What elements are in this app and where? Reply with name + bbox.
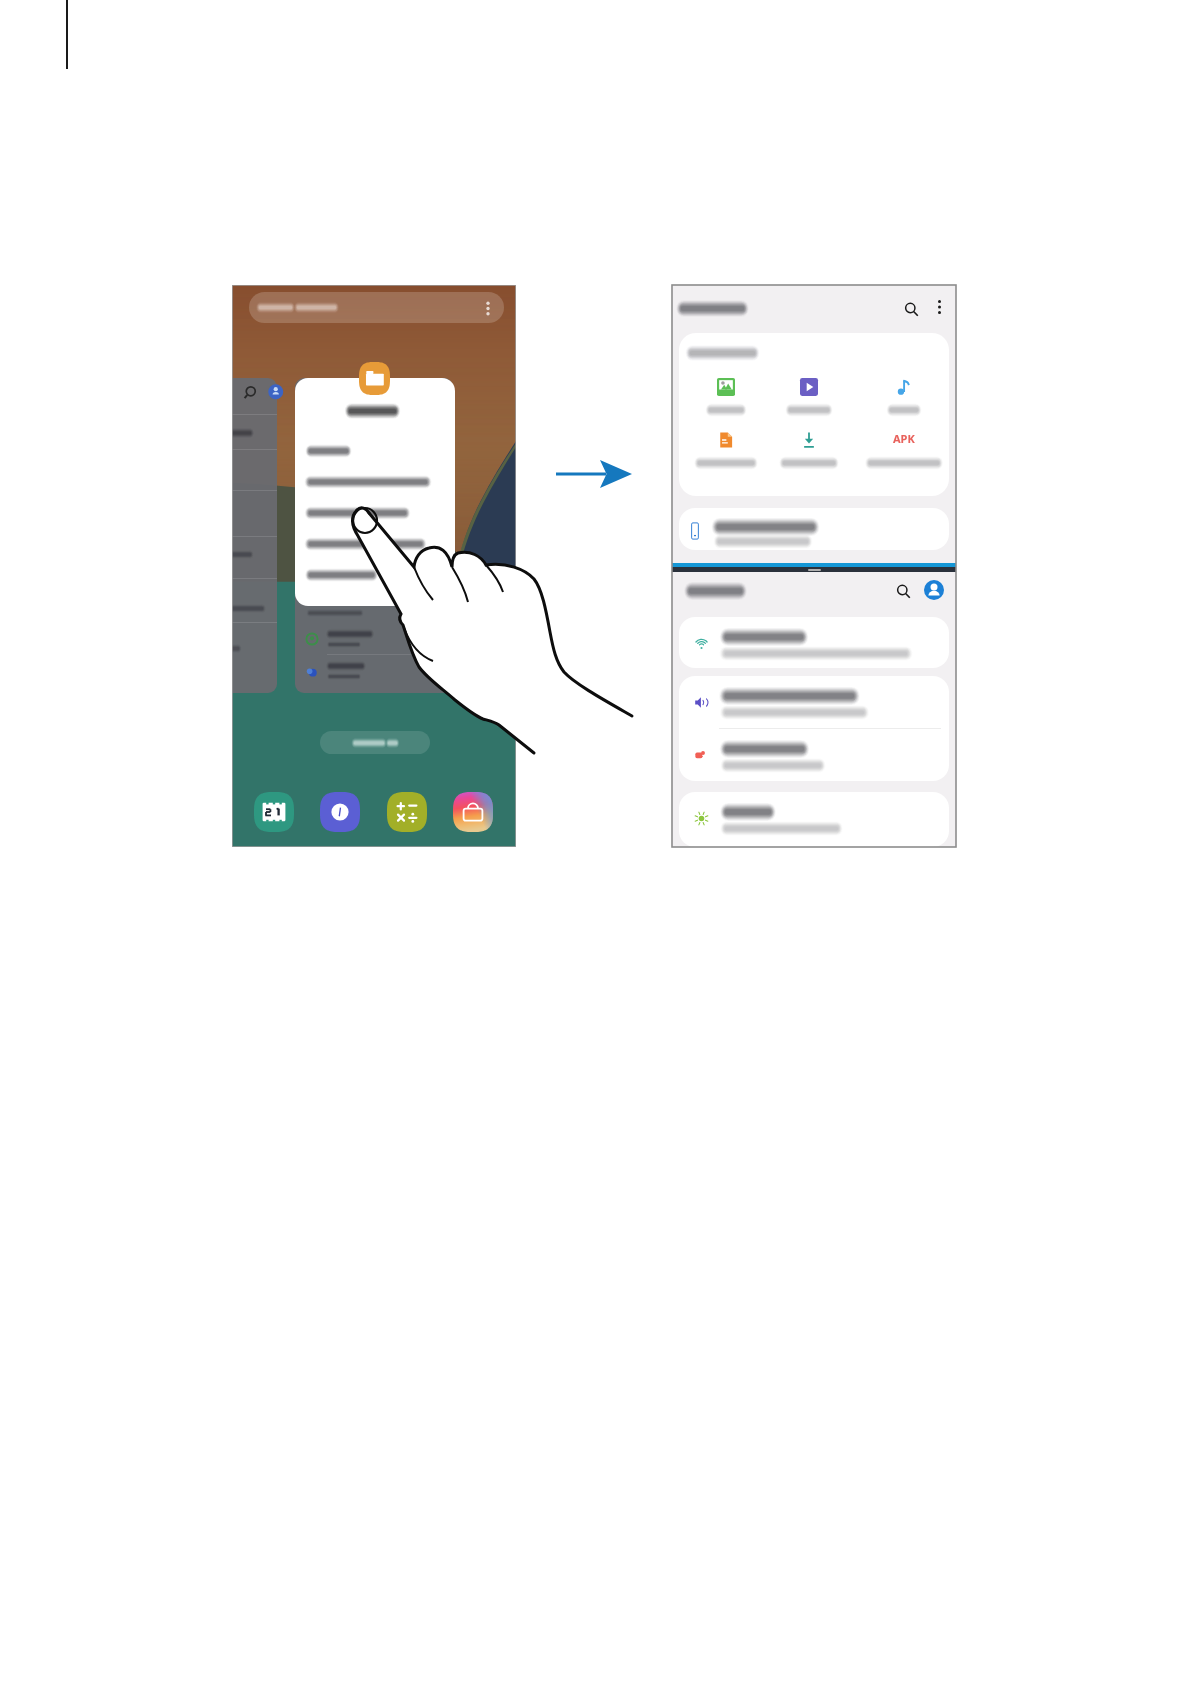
button[interactable]: Internet	[320, 792, 360, 832]
button[interactable]: Galaxy Store	[453, 792, 493, 832]
button[interactable]	[295, 502, 455, 524]
button[interactable]: Calendar	[254, 792, 294, 832]
button[interactable]: More options	[930, 298, 948, 316]
button[interactable]: Finder search	[249, 292, 504, 323]
button[interactable]: Videos	[764, 378, 854, 426]
button[interactable]	[295, 378, 453, 693]
button[interactable]	[679, 617, 949, 668]
button[interactable]: Search	[900, 298, 922, 320]
button[interactable]	[679, 792, 949, 847]
button[interactable]: Installation files	[859, 431, 949, 479]
button[interactable]	[295, 440, 455, 462]
button[interactable]	[295, 564, 455, 586]
button[interactable]	[295, 378, 455, 606]
button[interactable]: Downloads	[764, 431, 854, 479]
button[interactable]	[320, 731, 430, 754]
button[interactable]	[679, 729, 949, 781]
staticText: APK	[893, 431, 915, 446]
button[interactable]: Search settings	[892, 580, 914, 602]
button[interactable]: Documents	[681, 431, 771, 479]
button[interactable]: Images	[681, 378, 771, 426]
button[interactable]	[679, 508, 949, 550]
button[interactable]	[679, 676, 949, 728]
button[interactable]	[295, 471, 455, 493]
button[interactable]	[295, 533, 455, 555]
button[interactable]: Calculator	[387, 792, 427, 832]
button[interactable]: Audio	[859, 378, 949, 426]
button[interactable]	[232, 378, 277, 693]
button[interactable]: Account	[924, 580, 944, 600]
